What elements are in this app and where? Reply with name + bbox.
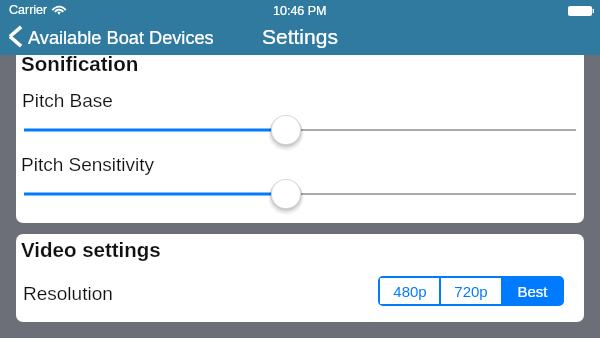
staticText: Video settings — [21, 238, 161, 261]
staticText: Settings — [262, 25, 338, 48]
button[interactable]: 720p — [441, 278, 501, 304]
staticText: Best — [517, 283, 548, 300]
staticText: Pitch Base — [22, 90, 113, 111]
staticText: 480p — [393, 283, 427, 300]
staticText: Resolution — [23, 283, 113, 304]
button[interactable]: Back — [0, 22, 224, 55]
button[interactable]: Best — [503, 278, 562, 304]
other: Back — [8, 25, 23, 48]
staticText: Sonification — [21, 55, 139, 75]
staticText: Available Boat Devices — [28, 28, 214, 48]
button[interactable]: 480p — [380, 278, 439, 304]
staticText: Pitch Sensitivity — [21, 154, 155, 175]
staticText: 10:46 PM — [273, 4, 327, 18]
staticText: Carrier — [9, 3, 48, 17]
staticText: 720p — [454, 283, 488, 300]
